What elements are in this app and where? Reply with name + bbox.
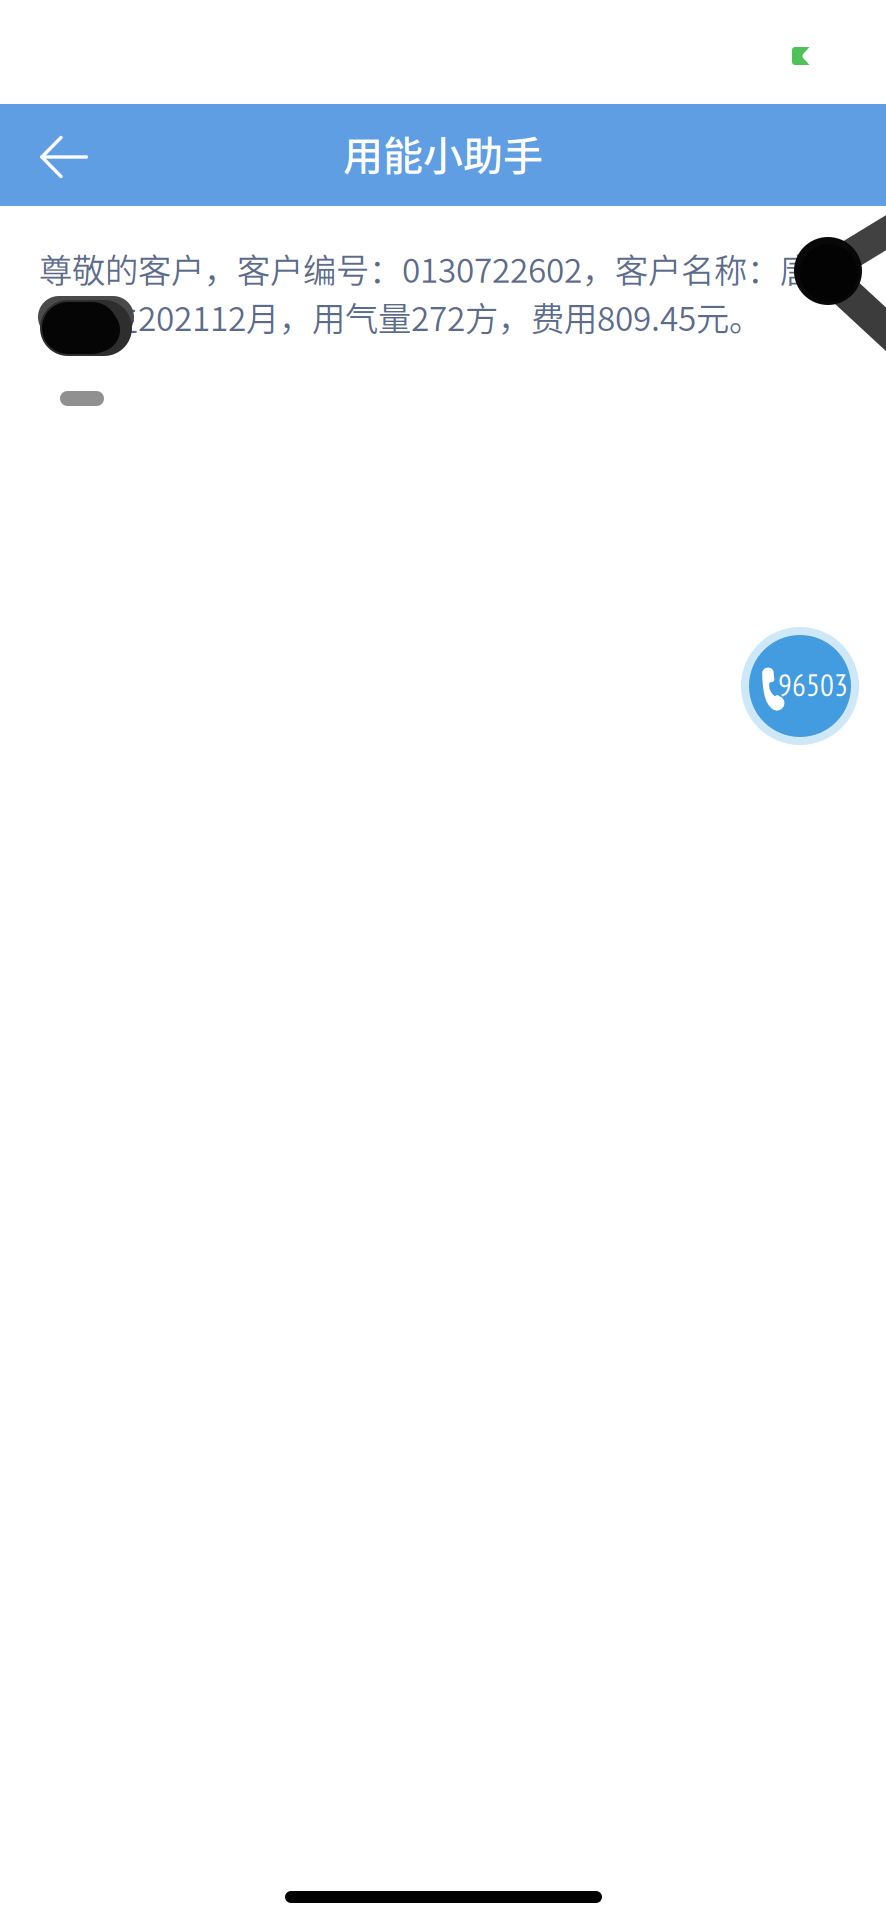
staticText: 华先生202112月，用气量272方，费用809.45元。 xyxy=(39,292,762,341)
staticText: 96503 xyxy=(778,665,848,705)
button[interactable]: Back xyxy=(0,104,112,205)
staticText: 尊敬的客户，客户编号：0130722602，客户名称：唐春 xyxy=(39,244,846,292)
button[interactable]: Call 96503 xyxy=(741,627,859,745)
staticText: 用能小助手 xyxy=(343,124,543,182)
